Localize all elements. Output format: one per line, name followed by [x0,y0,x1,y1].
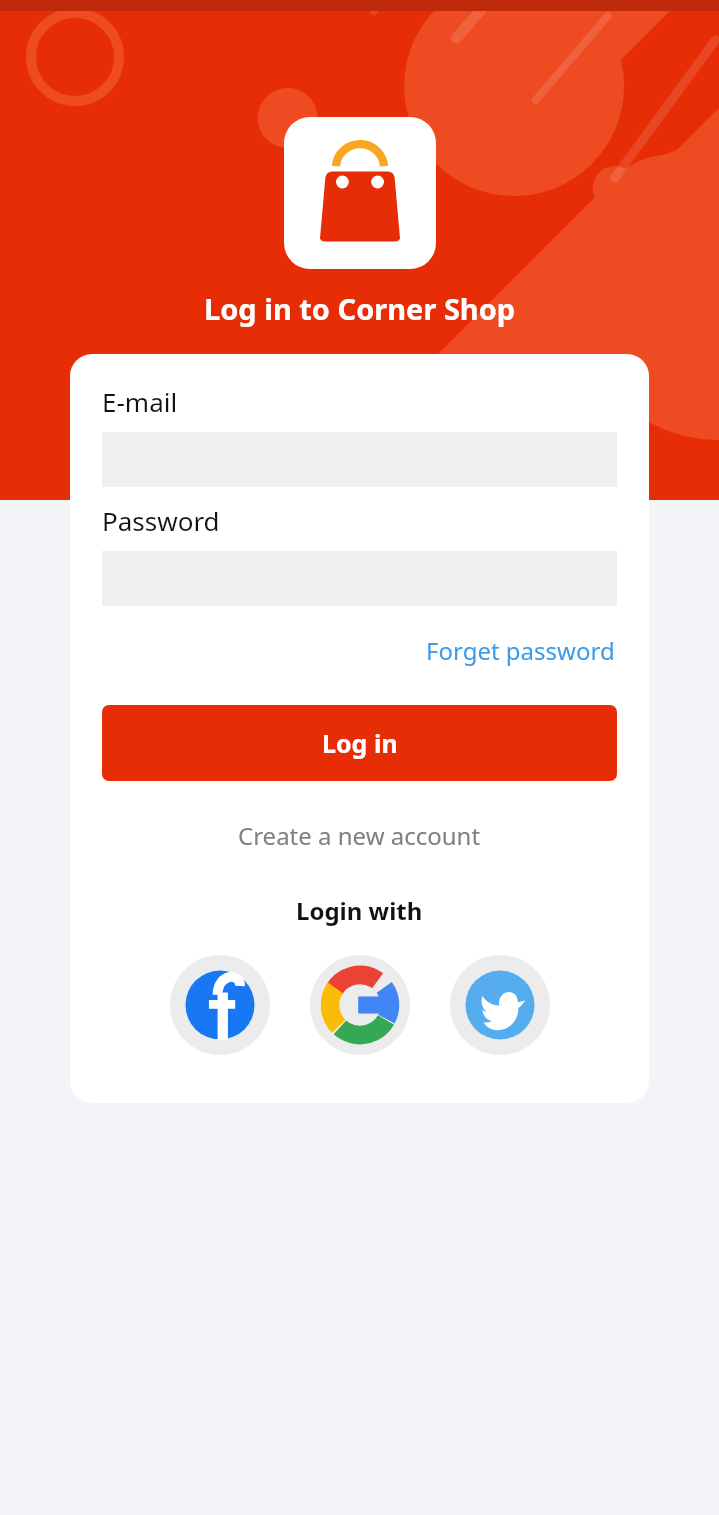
staticText: Forget password [426,634,615,667]
button[interactable]: Log in with Facebook [170,955,270,1055]
staticText: Log in [322,726,398,760]
staticText: E-mail [102,384,178,419]
staticText: Password [102,503,220,538]
button[interactable]: Log in with Google [310,955,410,1055]
button[interactable]: Log in with Twitter [450,955,550,1055]
staticText: Create a new account [238,819,481,852]
staticText: Log in to Corner Shop [204,289,516,328]
button[interactable]: Forget password [424,628,617,673]
staticText: Login with [296,894,423,927]
button[interactable]: Log in [102,705,617,781]
button[interactable]: Create a new account [234,813,485,858]
